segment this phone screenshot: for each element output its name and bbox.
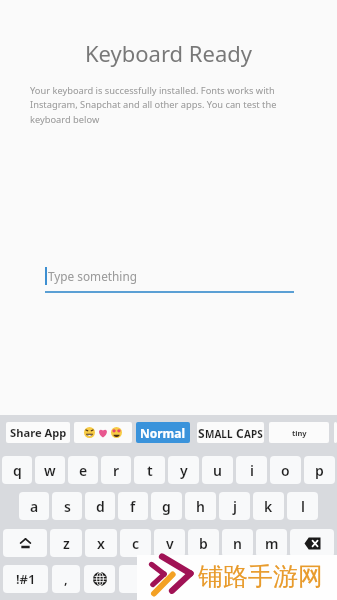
staticText: Keyboard Ready (0, 38, 337, 68)
staticText: y (180, 461, 188, 480)
button[interactable]: k (253, 492, 284, 520)
button[interactable]: f (118, 492, 148, 520)
button[interactable]: n (222, 529, 253, 557)
staticText: Type something (48, 268, 137, 284)
staticText: Share App (10, 425, 67, 440)
staticText: q (13, 461, 22, 480)
staticText: 铺路手游网 (198, 561, 323, 592)
button[interactable]: d (85, 492, 115, 520)
button[interactable]: tiny (269, 422, 329, 443)
button[interactable]: g (151, 492, 182, 520)
button[interactable]: S (197, 422, 264, 443)
staticText: j (233, 497, 237, 516)
staticText: f (130, 497, 136, 516)
button[interactable] (334, 422, 337, 443)
button[interactable]: Share App (6, 422, 70, 443)
button[interactable]: p (304, 456, 335, 484)
staticText: l (301, 497, 305, 516)
button[interactable]: m (256, 529, 287, 557)
button[interactable]: , (52, 565, 80, 593)
staticText: r (113, 461, 120, 480)
staticText: C (236, 425, 244, 441)
button[interactable]: c (120, 529, 151, 557)
staticText: s (64, 497, 71, 516)
button[interactable]: r (101, 456, 131, 484)
button[interactable]: v (154, 529, 185, 557)
staticText: w (44, 461, 56, 480)
staticText: . (269, 570, 273, 588)
staticText: i (250, 461, 254, 480)
staticText: a (30, 497, 39, 516)
button[interactable] (119, 565, 253, 593)
button[interactable]: u (202, 456, 233, 484)
staticText: d (96, 497, 105, 516)
button[interactable]: l (287, 492, 318, 520)
button[interactable]: j (219, 492, 250, 520)
staticText: p (315, 461, 324, 480)
button[interactable]: q (2, 456, 32, 484)
staticText: MALL (205, 427, 236, 441)
button[interactable]: i (236, 456, 267, 484)
staticText: u (213, 461, 222, 480)
staticText: o (281, 461, 290, 480)
staticText: , (64, 570, 68, 588)
staticText: e (79, 461, 88, 480)
staticText: z (63, 534, 70, 553)
button[interactable]: Normal (136, 422, 190, 443)
button[interactable]: s (52, 492, 82, 520)
staticText: Normal (140, 425, 186, 441)
button[interactable]: t (134, 456, 165, 484)
staticText: c (132, 534, 140, 553)
staticText: !#1 (16, 570, 36, 588)
staticText: h (196, 497, 205, 516)
staticText: tiny (292, 428, 307, 438)
button[interactable]: . (257, 565, 285, 593)
staticText: S (198, 425, 205, 441)
button[interactable]: z (50, 529, 82, 557)
button[interactable]: a (19, 492, 49, 520)
staticText: m (265, 534, 279, 553)
button[interactable]: Backspace (290, 529, 334, 557)
button[interactable]: y (168, 456, 199, 484)
button[interactable]: b (188, 529, 219, 557)
staticText: k (264, 497, 273, 516)
button[interactable]: x (85, 529, 117, 557)
button[interactable]: w (35, 456, 65, 484)
button[interactable] (74, 422, 132, 443)
button[interactable]: e (68, 456, 98, 484)
staticText: x (97, 534, 105, 553)
staticText: t (147, 461, 153, 480)
button[interactable]: !#1 (3, 565, 48, 593)
button[interactable]: h (185, 492, 216, 520)
staticText: b (199, 534, 208, 553)
staticText: APS (244, 427, 263, 441)
button[interactable]: Shift (3, 529, 47, 557)
staticText: v (166, 534, 174, 553)
button[interactable] (289, 565, 334, 593)
button[interactable]: o (270, 456, 301, 484)
button[interactable]: Change language (84, 565, 115, 593)
staticText: g (162, 497, 171, 516)
staticText: Your keyboard is successfully installed.… (30, 84, 283, 126)
staticText: n (233, 534, 242, 553)
